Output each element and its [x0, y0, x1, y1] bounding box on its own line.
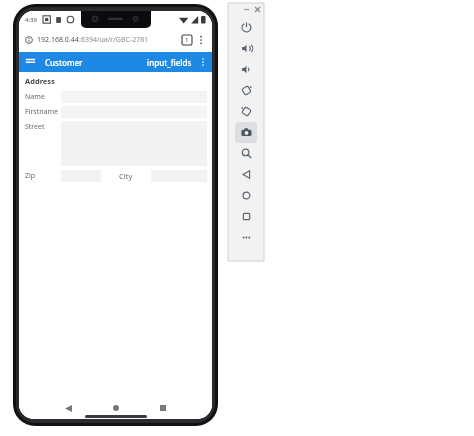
button[interactable]: Volume down	[235, 59, 257, 80]
button[interactable]: Screenshot	[235, 122, 257, 143]
button[interactable]: Home	[92, 397, 139, 419]
staticText: :6394/ua/r/GBC-2781	[79, 35, 149, 45]
button[interactable]: Overview	[235, 206, 257, 227]
button[interactable]: Zoom	[235, 143, 257, 164]
other: Site information	[25, 36, 33, 44]
button[interactable]: More options	[198, 55, 208, 69]
button[interactable]: Tabs	[182, 35, 192, 45]
button[interactable]: Volume up	[235, 38, 257, 59]
button[interactable]: More options	[196, 33, 206, 47]
staticText: Zip	[25, 171, 61, 181]
button[interactable]: Menu	[24, 55, 37, 69]
staticText: City	[119, 171, 133, 181]
staticText: Firstname	[25, 107, 61, 117]
staticText: Address	[25, 76, 55, 86]
button[interactable]: Rotate left	[235, 80, 257, 101]
button[interactable]: Recent apps	[139, 397, 186, 419]
staticText: Customer	[45, 57, 83, 68]
button[interactable]: Back	[235, 164, 257, 185]
staticText: Street	[25, 122, 61, 132]
button[interactable]: Close	[253, 5, 261, 13]
button[interactable]: Site information	[19, 28, 212, 52]
staticText: input_fields	[147, 57, 192, 68]
button[interactable]: Rotate right	[235, 101, 257, 122]
staticText: 1	[185, 36, 189, 44]
staticText: 192.168.0.44	[37, 35, 79, 45]
button[interactable]: Minimize	[242, 5, 250, 13]
staticText: 4:39	[25, 16, 37, 24]
button[interactable]: More	[235, 227, 257, 248]
button[interactable]: Power	[235, 17, 257, 38]
staticText: Name	[25, 92, 61, 102]
button[interactable]: Home	[235, 185, 257, 206]
button[interactable]: Back	[45, 397, 92, 419]
